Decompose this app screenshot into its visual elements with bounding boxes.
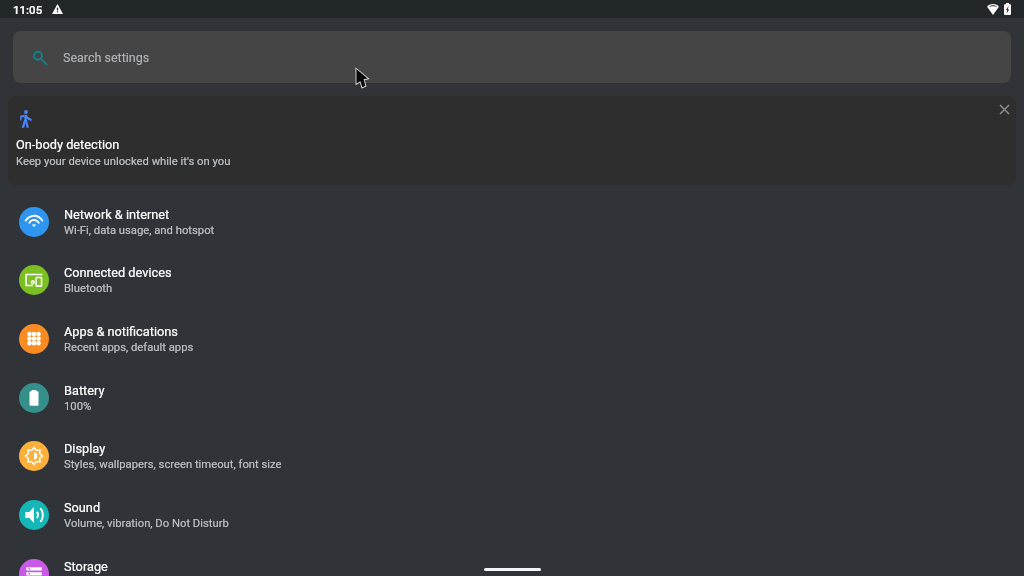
staticText: Sound [64, 500, 101, 515]
button[interactable]: Search [13, 31, 1011, 83]
staticText: On-body detection [16, 137, 120, 152]
staticText: Search settings [63, 50, 150, 65]
staticText: Apps & notifications [64, 324, 178, 339]
button[interactable]: On-body detection [8, 96, 1016, 185]
staticText: 100% [64, 400, 92, 413]
staticText: Battery [64, 383, 105, 398]
button[interactable]: Display [0, 426, 1024, 485]
staticText: 11:05 [13, 3, 43, 16]
staticText: Display [64, 441, 106, 456]
staticText: Network & internet [64, 207, 170, 222]
button[interactable]: Connected devices [0, 250, 1024, 309]
button[interactable]: Sound [0, 485, 1024, 544]
staticText: Storage [64, 559, 108, 574]
staticText: Keep your device unlocked while it's on … [16, 155, 231, 168]
button[interactable]: Apps & notifications [0, 309, 1024, 368]
button[interactable]: Storage [0, 544, 1024, 576]
staticText: Volume, vibration, Do Not Disturb [64, 517, 229, 530]
other: Search [32, 50, 47, 65]
button[interactable]: Network & internet [0, 192, 1024, 251]
staticText: Connected devices [64, 265, 172, 280]
staticText: Bluetooth [64, 282, 113, 295]
staticText: Styles, wallpapers, screen timeout, font… [64, 458, 282, 471]
button[interactable]: Battery [0, 368, 1024, 427]
button[interactable]: Dismiss suggestion [992, 97, 1016, 121]
staticText: Recent apps, default apps [64, 341, 194, 354]
staticText: Wi-Fi, data usage, and hotspot [64, 224, 215, 237]
